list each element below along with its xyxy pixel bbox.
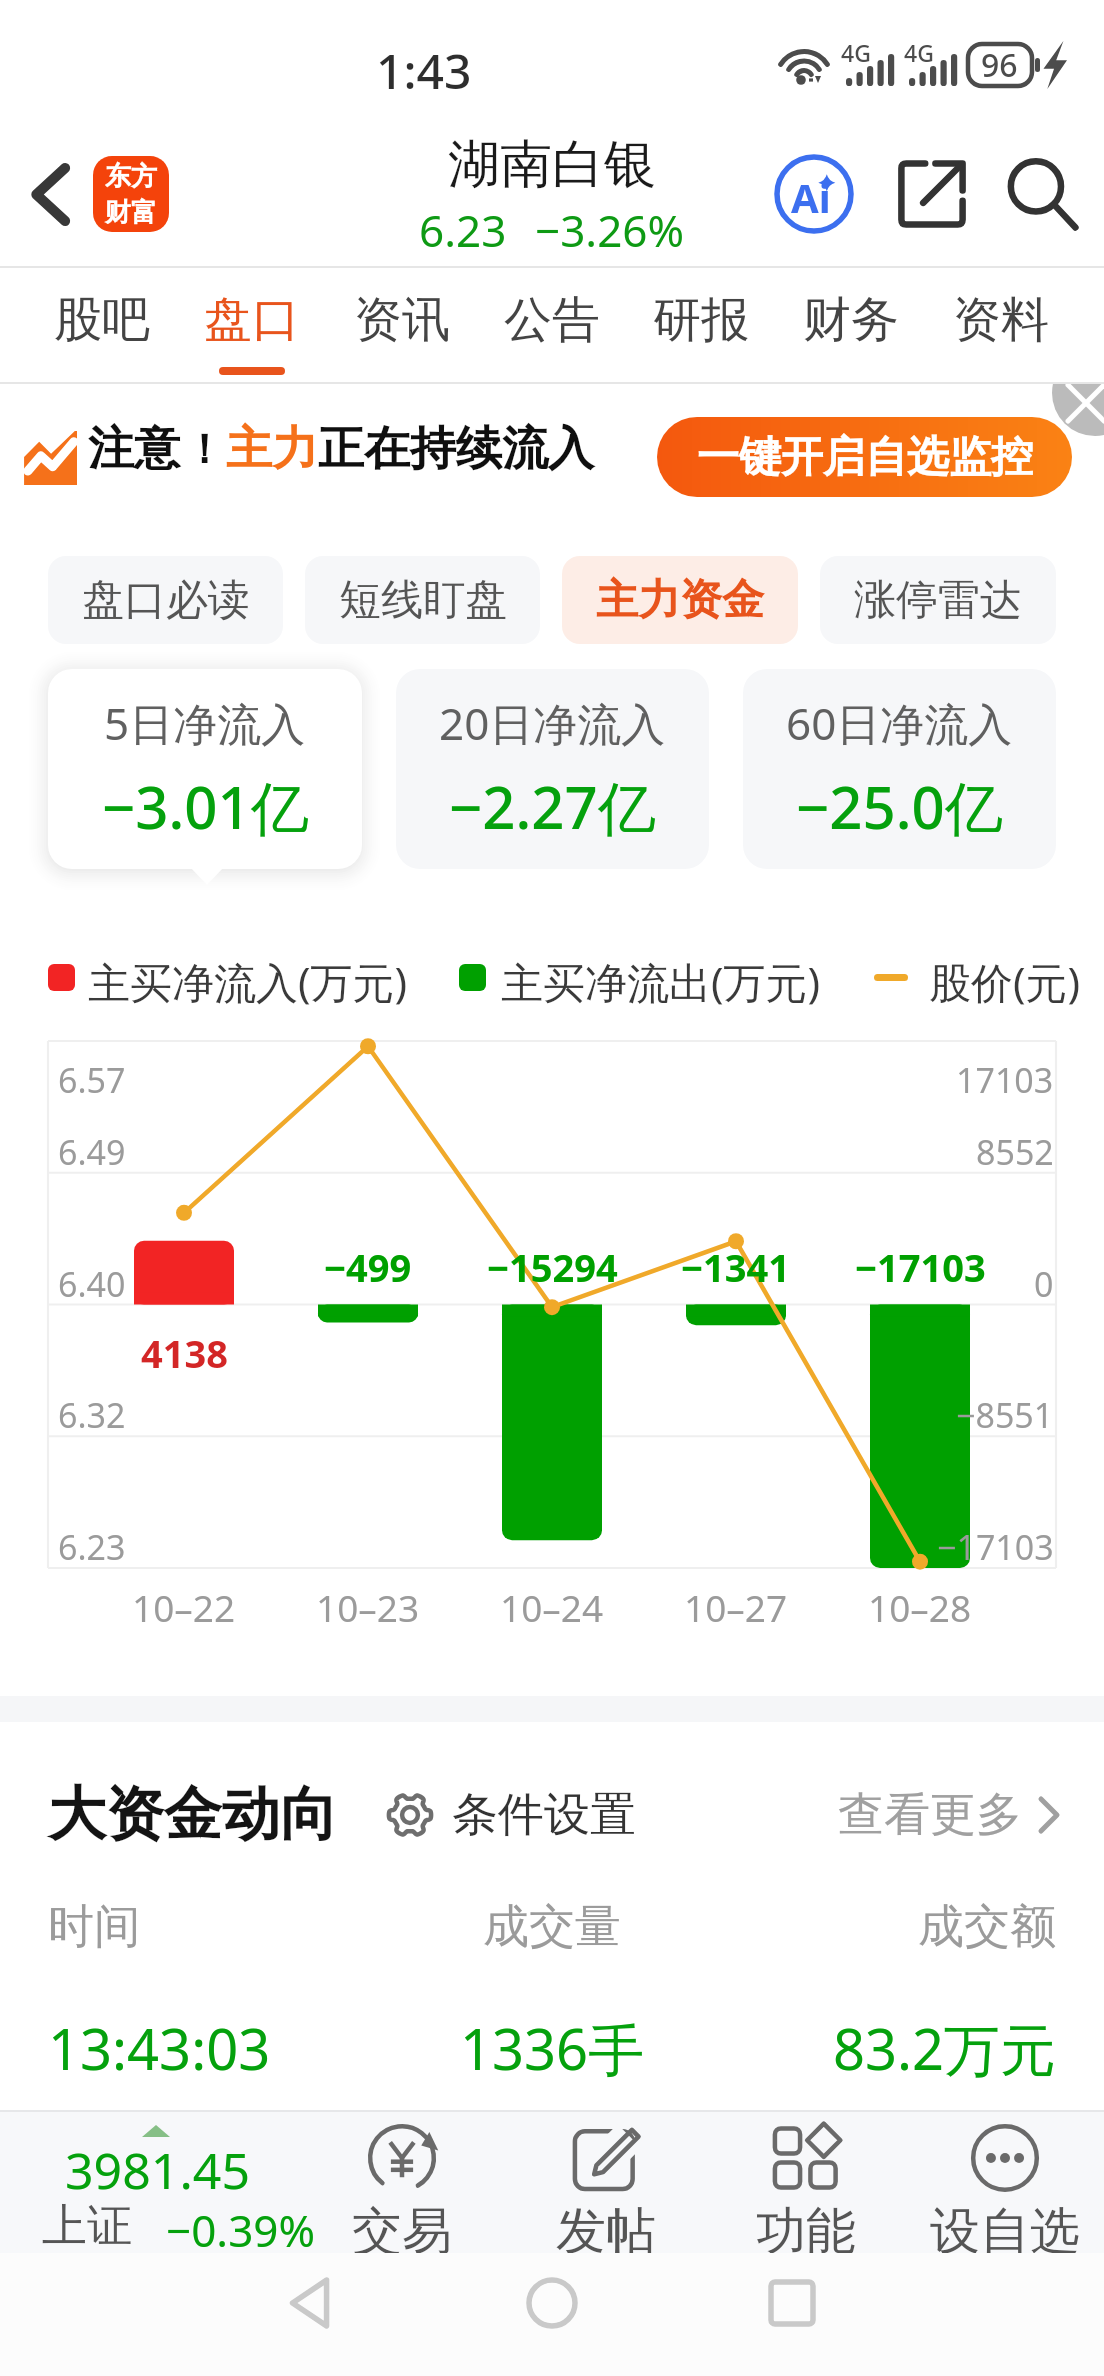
staticText: 83.2万元 — [720, 2010, 1056, 2086]
staticText: 6.23 — [58, 1524, 126, 1570]
button[interactable]: 公告 — [504, 268, 600, 384]
staticText: 设自选 — [930, 2200, 1080, 2263]
staticText: 8552 — [976, 1129, 1054, 1175]
staticText: 10–27 — [684, 1582, 788, 1632]
staticText: 条件设置 — [452, 1786, 636, 1844]
button[interactable]: 5日净流入 — [48, 669, 362, 869]
staticText: 10–24 — [500, 1582, 604, 1632]
staticText: 10–28 — [868, 1582, 972, 1632]
staticText: 10–22 — [132, 1582, 236, 1632]
staticText: −3.01亿 — [102, 767, 309, 846]
staticText: 4G — [904, 37, 934, 68]
staticText: 4G — [841, 37, 871, 68]
staticText: 1:43 — [376, 38, 472, 103]
staticText: 0 — [1034, 1261, 1054, 1307]
staticText: 短线盯盘 — [339, 574, 507, 627]
staticText: 查看更多 — [838, 1786, 1022, 1844]
button[interactable]: 资料 — [953, 268, 1049, 384]
staticText: 主买净流出(万元) — [501, 953, 821, 1005]
staticText: 10–23 — [316, 1582, 420, 1632]
button[interactable]: 条件设置 — [386, 1786, 636, 1844]
button[interactable]: Search — [994, 146, 1090, 242]
button[interactable]: 盘口必读 — [48, 556, 283, 644]
button[interactable]: East Money home — [93, 156, 169, 232]
staticText: 上证 — [42, 2198, 132, 2255]
staticText: 主买净流入(万元) — [88, 953, 408, 1005]
staticText: 股吧 — [54, 290, 150, 350]
staticText: 时间 — [48, 1898, 384, 1956]
staticText: 交易 — [352, 2200, 452, 2263]
staticText: −17103 — [855, 1241, 986, 1293]
staticText: −25.0亿 — [796, 767, 1003, 846]
staticText: −0.39% — [166, 2200, 316, 2260]
button[interactable]: 主力资金 — [562, 556, 798, 644]
button[interactable]: 60日净流入 — [743, 669, 1056, 869]
staticText: 湖南白银 — [448, 132, 656, 198]
staticText: −8551 — [956, 1392, 1054, 1438]
button[interactable]: 涨停雷达 — [820, 556, 1056, 644]
staticText: 3981.45 — [65, 2136, 250, 2204]
staticText: 17103 — [956, 1057, 1054, 1103]
staticText: 1336手 — [384, 2010, 720, 2086]
staticText: −499 — [324, 1241, 412, 1293]
staticText: 4138 — [141, 1327, 228, 1379]
button[interactable]: 研报 — [653, 268, 749, 384]
staticText: 资讯 — [354, 290, 450, 350]
staticText: 主力资金 — [596, 574, 764, 627]
staticText: 财务 — [803, 290, 899, 350]
staticText: 6.57 — [58, 1057, 126, 1103]
button[interactable]: 功能 — [716, 2110, 896, 2253]
button[interactable]: Home — [502, 2253, 602, 2353]
button[interactable]: 资讯 — [354, 268, 450, 384]
staticText: 股价(元) — [929, 953, 1081, 1005]
button[interactable]: 股吧 — [54, 268, 150, 384]
staticText: 功能 — [756, 2200, 856, 2263]
button[interactable]: 13:43:03 — [48, 2010, 1056, 2086]
staticText: 盘口必读 — [82, 574, 250, 627]
staticText: 注意 — [88, 420, 180, 478]
button[interactable]: 短线盯盘 — [305, 556, 540, 644]
staticText: 成交量 — [384, 1898, 720, 1956]
staticText: Ai — [791, 170, 831, 224]
staticText: −1341 — [681, 1241, 791, 1293]
button[interactable]: Recents — [742, 2253, 842, 2353]
button[interactable]: 查看更多 — [838, 1786, 1060, 1844]
staticText: −2.27亿 — [449, 767, 656, 846]
staticText: −3.26% — [535, 200, 685, 260]
button[interactable]: 20日净流入 — [396, 669, 709, 869]
staticText: 正在持续流入 — [318, 420, 594, 478]
staticText: 成交额 — [720, 1898, 1056, 1956]
staticText: 6.40 — [58, 1261, 126, 1307]
staticText: 盘口 — [204, 290, 300, 350]
button[interactable]: 3981.45 — [0, 2110, 320, 2253]
staticText: 5日净流入 — [104, 693, 306, 753]
staticText: 6.32 — [58, 1392, 126, 1438]
button[interactable]: 一键开启自选监控 — [657, 417, 1072, 497]
staticText: 研报 — [653, 290, 749, 350]
staticText: −15294 — [487, 1241, 618, 1293]
staticText: 6.49 — [58, 1129, 126, 1175]
staticText: 13:43:03 — [48, 2010, 384, 2086]
staticText: 资料 — [953, 290, 1049, 350]
staticText: 主力 — [226, 420, 318, 478]
staticText: 大资金动向 — [48, 1778, 338, 1851]
button[interactable]: 财务 — [803, 268, 899, 384]
staticText: 公告 — [504, 290, 600, 350]
button[interactable]: AI assistant — [766, 146, 862, 242]
staticText: 一键开启自选监控 — [697, 431, 1033, 484]
staticText: 涨停雷达 — [854, 574, 1022, 627]
staticText: 60日净流入 — [786, 693, 1013, 753]
button[interactable]: 设自选 — [915, 2110, 1095, 2253]
staticText: 东方 — [105, 160, 157, 193]
staticText: 财富 — [105, 196, 157, 229]
button[interactable]: Share — [884, 146, 980, 242]
staticText: 发帖 — [556, 2200, 656, 2263]
button[interactable]: 交易 — [312, 2110, 492, 2253]
button[interactable]: Close ad — [1052, 384, 1104, 436]
button[interactable]: Back — [260, 2253, 360, 2353]
button[interactable]: 盘口 — [204, 268, 300, 384]
staticText: 6.23 — [419, 200, 507, 260]
button[interactable]: 发帖 — [516, 2110, 696, 2253]
staticText: 20日净流入 — [439, 693, 666, 753]
button[interactable]: Back — [8, 152, 92, 236]
